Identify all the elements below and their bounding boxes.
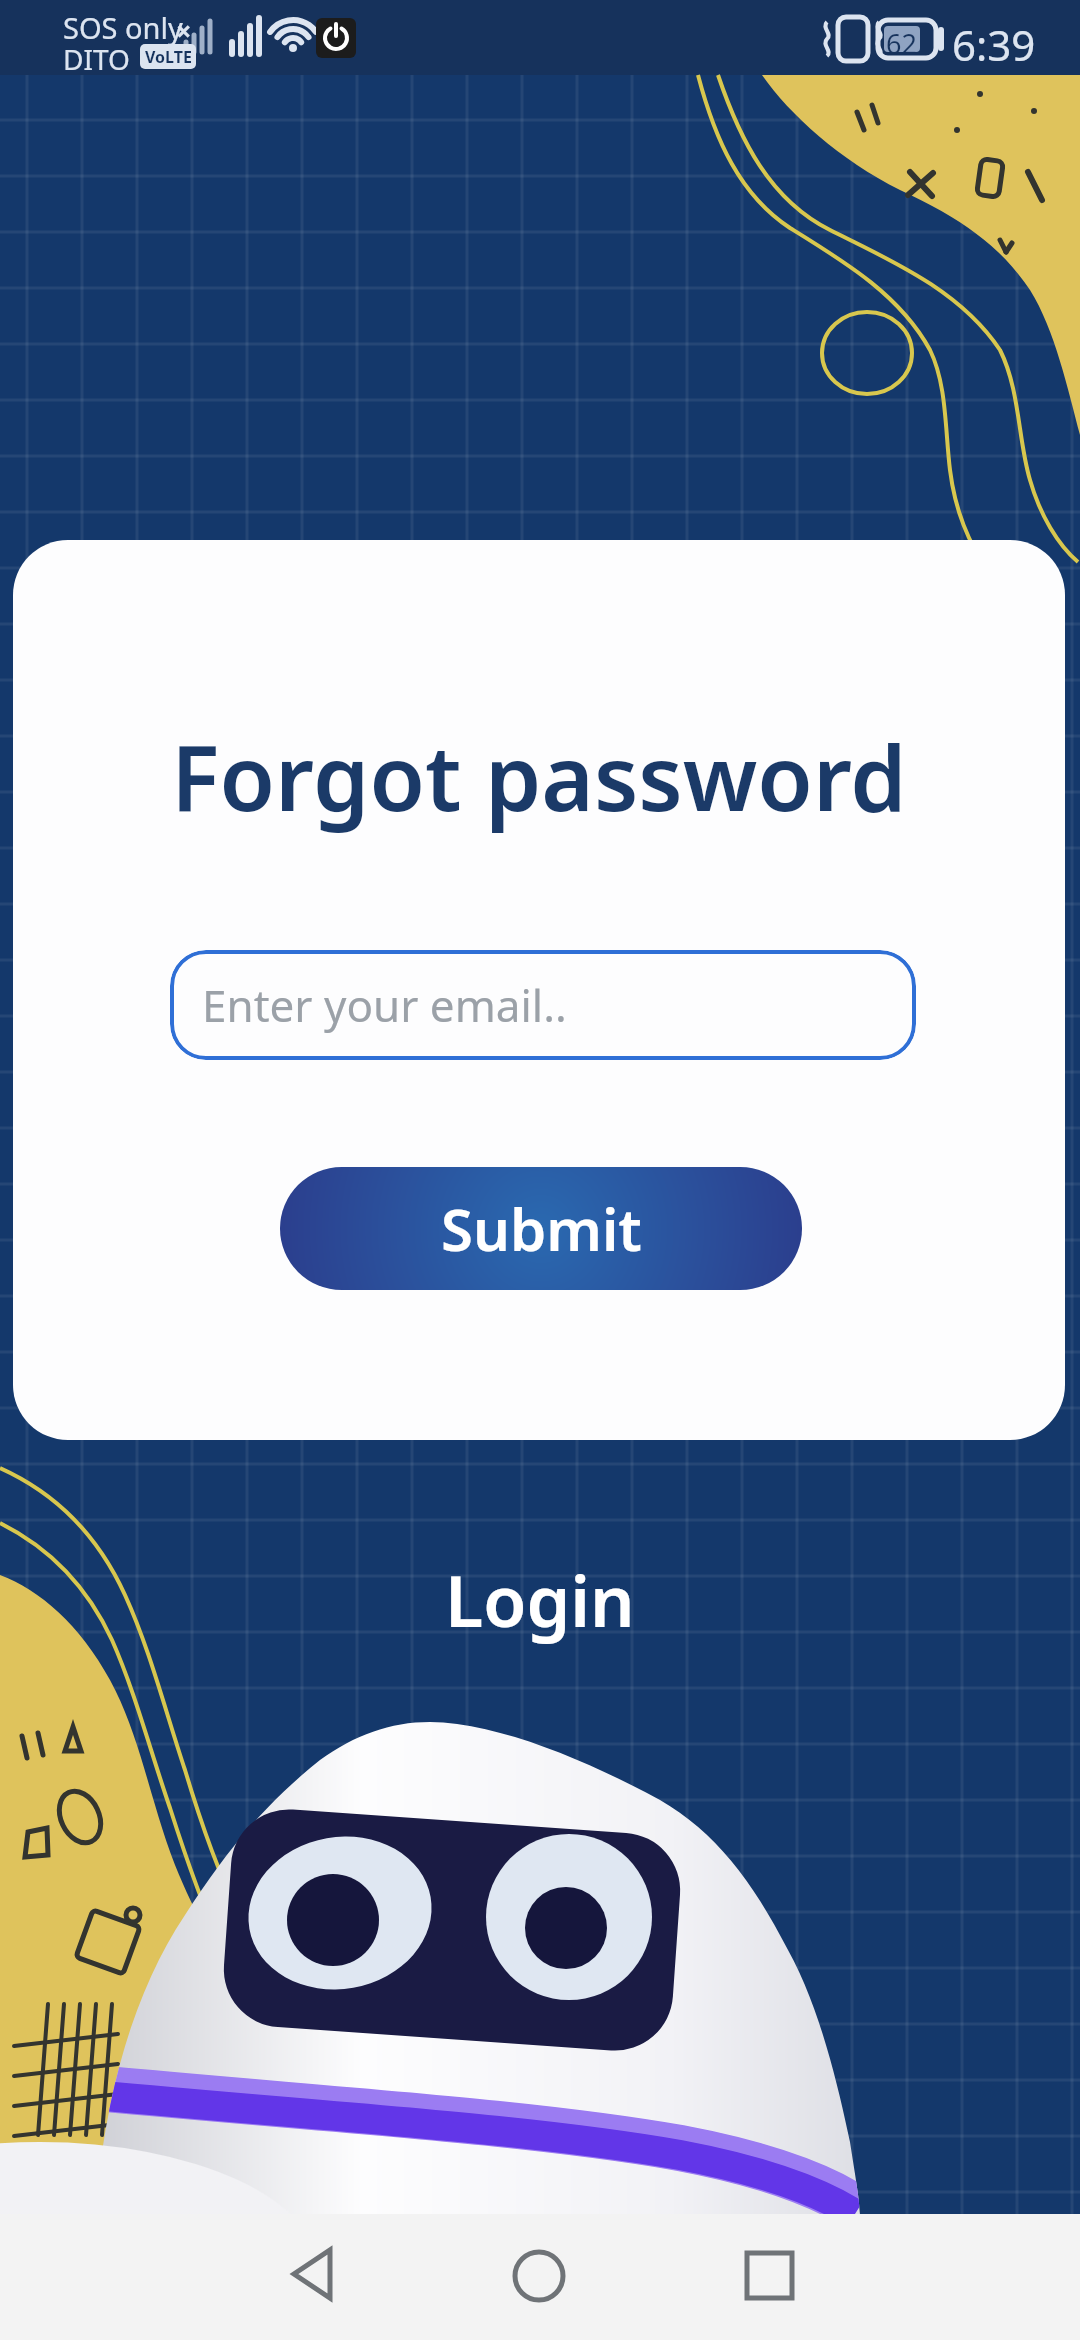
staticText: Forgot password: [171, 715, 907, 838]
button[interactable]: [726, 2234, 812, 2320]
button[interactable]: [270, 2234, 356, 2320]
staticText: Submit: [441, 1189, 642, 1268]
staticText: ×: [176, 12, 192, 49]
staticText: VoLTE: [145, 46, 192, 68]
button[interactable]: [497, 2234, 583, 2320]
staticText: SOS only: [63, 8, 183, 47]
staticText: 6:39: [952, 16, 1036, 73]
staticText: 62: [886, 25, 917, 62]
button[interactable]: Enter your email..: [170, 950, 916, 1060]
staticText: DITO: [63, 40, 130, 78]
staticText: Enter your email..: [202, 975, 567, 1035]
button[interactable]: Login: [445, 1552, 635, 1647]
button[interactable]: Submit: [280, 1167, 802, 1290]
